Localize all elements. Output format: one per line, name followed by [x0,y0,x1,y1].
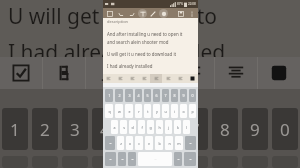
button[interactable]: s [120,120,127,134]
button[interactable]: Checklist [0,57,42,89]
button[interactable]: d [129,120,136,134]
button[interactable]: Save [177,10,184,17]
button[interactable]: 1 [2,108,28,150]
button[interactable]: 6 [152,108,178,150]
staticText: 2 [40,118,50,141]
staticText: f [141,125,143,130]
staticText: I had already installed [8,38,226,67]
button[interactable]: Shift [105,136,115,150]
button[interactable]: Text colour [258,57,300,89]
button[interactable]: r [135,104,142,118]
button[interactable]: 7 [182,108,208,150]
button[interactable]: Bold [114,74,126,83]
button[interactable]: More options [188,10,195,17]
button[interactable]: 8 [171,89,178,102]
staticText: And after installing u need to open it [107,31,183,37]
button[interactable]: h [156,120,163,134]
button[interactable]: 5 [122,108,148,150]
button[interactable]: g [147,120,154,134]
button[interactable]: Align right [174,74,186,83]
button[interactable]: Redo [128,10,135,17]
button[interactable]: p [189,104,196,118]
staticText: w [118,109,121,114]
button[interactable]: Pen [149,10,156,17]
button[interactable]: w [115,104,123,118]
button[interactable]: Undo [117,10,124,17]
button[interactable]: l [183,120,190,134]
staticText: 3 [70,118,80,141]
staticText: 9 [250,118,260,141]
button[interactable]: 2 [115,89,123,102]
button[interactable]: Brush [159,9,168,18]
staticText: s [123,125,125,130]
button[interactable]: Italic [126,74,138,83]
staticText: k [177,125,179,130]
button[interactable]: y [153,104,160,118]
button[interactable]: 6 [153,89,160,102]
button[interactable]: 9 [242,108,268,150]
button[interactable]: Italic [86,57,128,89]
button[interactable]: 3 [125,89,133,102]
button[interactable]: m [175,136,183,150]
button[interactable]: j [165,120,172,134]
staticText: m [177,141,181,146]
button[interactable]: 7 [162,89,169,102]
button[interactable]: o [180,104,187,118]
button[interactable]: Settings [128,152,136,166]
button[interactable]: 0 [272,108,298,150]
button[interactable]: a [111,120,118,134]
staticText: z [120,141,122,146]
staticText: 5 [130,118,140,141]
button[interactable]: Colour [186,74,198,83]
button[interactable]: 5 [144,89,151,102]
staticText: l [186,125,187,130]
button[interactable]: x [126,136,133,150]
button[interactable]: Emoji [118,152,126,166]
button[interactable]: Text format [138,9,147,18]
button[interactable]: Align left [150,74,162,83]
staticText: description [107,19,129,24]
button[interactable]: u [162,104,169,118]
staticText: a [113,125,116,130]
button[interactable]: Checklist [103,74,114,83]
staticText: U will get it u need to download it [8,2,300,31]
button[interactable]: v [145,136,153,150]
button[interactable]: e [125,104,133,118]
staticText: 0 [191,93,194,98]
button[interactable]: f [138,120,145,134]
button[interactable]: c [135,136,143,150]
button[interactable]: Enter [184,152,196,166]
button[interactable]: Backspace [185,136,196,150]
button[interactable]: 3 [62,108,88,150]
button[interactable]: 8 [212,108,238,150]
button[interactable]: n [165,136,173,150]
button[interactable]: Underline [129,57,171,89]
staticText: U will get it u need to download it [107,51,177,57]
button[interactable]: Align center [162,74,174,83]
staticText: 9 [182,93,185,98]
button[interactable]: 2 [32,108,58,150]
button[interactable]: i [171,104,178,118]
button[interactable]: Checklist [106,10,113,17]
button[interactable]: Symbols [105,152,116,166]
button[interactable]: 1 [105,89,113,102]
button[interactable]: z [117,136,124,150]
button[interactable]: 4 [135,89,142,102]
button[interactable]: q [105,104,113,118]
button[interactable]: 0 [189,89,196,102]
button[interactable]: t [144,104,151,118]
button[interactable]: Period [174,152,182,166]
button[interactable]: b [155,136,163,150]
button[interactable]: 4 [92,108,118,150]
button[interactable]: Align center [215,57,257,89]
button[interactable]: Bold [43,57,85,89]
staticText: b [158,141,161,146]
button[interactable]: Underline [138,74,150,83]
staticText: 8 [220,118,230,141]
button[interactable]: k [174,120,181,134]
staticText: I had already installed [107,63,153,69]
button[interactable]: Align left [172,57,214,89]
staticText: 6 [160,118,170,141]
button[interactable]: 9 [180,89,187,102]
